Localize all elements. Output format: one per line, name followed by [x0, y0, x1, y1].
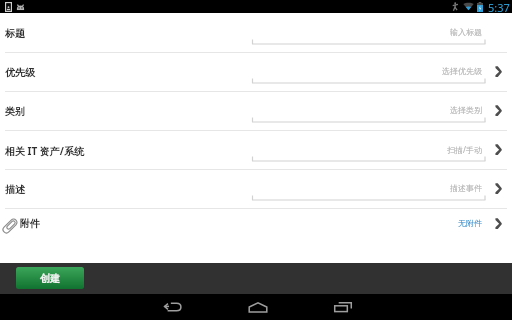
staticText: 描述 — [5, 183, 25, 196]
staticText: 标题 — [5, 27, 25, 40]
staticText: 附件 — [20, 217, 40, 230]
button[interactable]: Recent apps — [320, 294, 366, 320]
button[interactable]: Back — [150, 294, 196, 320]
button[interactable]: 创建 — [16, 267, 84, 289]
staticText: 5:37 — [488, 0, 510, 13]
staticText: 输入标题 — [450, 27, 482, 37]
button[interactable]: Home — [235, 294, 281, 320]
staticText: 类别 — [5, 105, 25, 118]
button[interactable]: 描述 — [0, 170, 512, 209]
staticText: 扫描/手动 — [447, 144, 482, 155]
button[interactable]: 类别 — [0, 92, 512, 131]
staticText: 选择优先级 — [442, 66, 482, 76]
staticText: 优先级 — [5, 66, 35, 79]
button[interactable]: 相关 IT 资产/系统 — [0, 131, 512, 170]
button[interactable]: 优先级 — [0, 53, 512, 92]
staticText: 描述事件 — [450, 183, 482, 193]
staticText: 无附件 — [458, 218, 482, 228]
staticText: 创建 — [40, 272, 60, 285]
staticText: 选择类别 — [450, 105, 482, 115]
button[interactable]: 附件 — [0, 209, 512, 248]
button[interactable]: 标题 — [0, 14, 512, 53]
staticText: 相关 IT 资产/系统 — [5, 144, 85, 158]
